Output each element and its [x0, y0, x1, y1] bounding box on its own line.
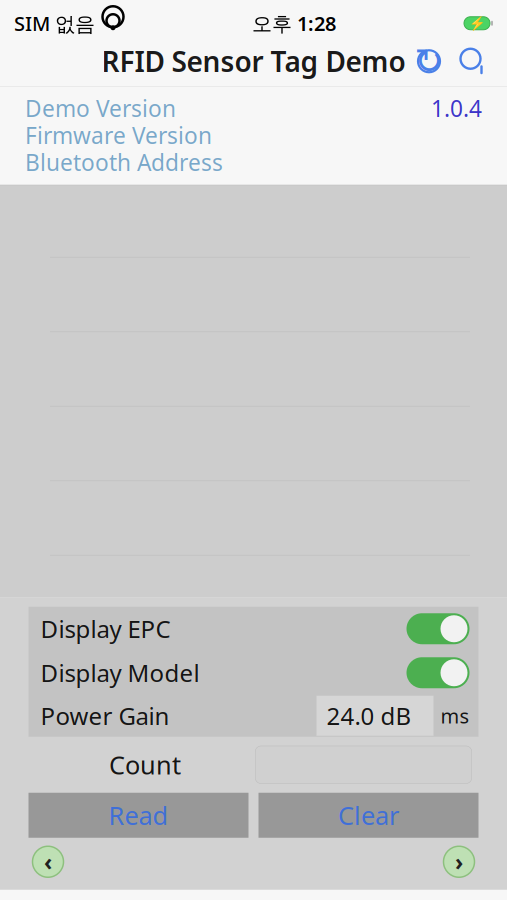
staticText: Demo Version [25, 93, 176, 123]
staticText: ‹ [44, 847, 52, 877]
button[interactable]: Clear [258, 793, 478, 838]
staticText: Display EPC [40, 613, 170, 645]
staticText: Bluetooth Address [25, 147, 223, 177]
staticText: 24.0 dB [326, 700, 411, 732]
staticText: Display Model [40, 657, 199, 689]
staticText: ms [440, 702, 469, 729]
button[interactable]: Previous [28, 842, 68, 882]
staticText: Clear [338, 798, 399, 832]
staticText: Firmware Version [25, 120, 212, 150]
button[interactable]: 24.0 dB [316, 696, 433, 736]
button[interactable]: Next [439, 842, 479, 882]
staticText: 1.0.4 [431, 93, 482, 123]
staticText: ↻ [414, 42, 443, 81]
button[interactable]: Search [451, 39, 495, 83]
staticText: › [455, 847, 463, 877]
staticText: Power Gain [40, 700, 169, 732]
staticText: RFID Sensor Tag Demo [101, 43, 405, 80]
staticText: ⚡ [468, 16, 485, 31]
staticText: Read [108, 798, 168, 832]
staticText: Count [109, 748, 181, 781]
staticText: SIM 없음 [14, 10, 95, 37]
button[interactable]: Read [28, 793, 248, 838]
button[interactable]: Display Model [406, 657, 469, 688]
staticText: 오후 1:28 [252, 10, 336, 37]
button[interactable]: Display EPC [406, 613, 469, 644]
button[interactable]: Refresh [407, 39, 451, 83]
